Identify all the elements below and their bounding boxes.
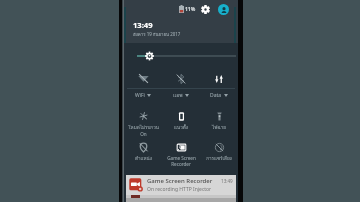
button[interactable]: การแชร์เสียง bbox=[200, 132, 238, 162]
button[interactable]: WiFi bbox=[124, 89, 162, 101]
button[interactable]: ตำแหน่ง bbox=[124, 132, 162, 162]
staticText: Game Screen bbox=[167, 155, 196, 161]
button[interactable]: Wi-Fi bbox=[124, 69, 162, 88]
button[interactable]: Game Screen bbox=[162, 132, 200, 167]
staticText: แนวตั้ง bbox=[174, 124, 188, 131]
staticText: การแชร์เสียง bbox=[206, 155, 232, 162]
staticText: Data bbox=[210, 92, 222, 99]
button[interactable]: Settings bbox=[201, 5, 210, 14]
button[interactable]: Data bbox=[200, 89, 238, 101]
button[interactable]: Bluetooth bbox=[162, 69, 200, 88]
staticText: 13:49 bbox=[133, 20, 153, 30]
staticText: On recording HTTP Injector bbox=[147, 186, 212, 193]
staticText: WiFi bbox=[135, 92, 145, 99]
button[interactable]: แอพ bbox=[162, 89, 200, 101]
staticText: 13:49 bbox=[221, 178, 233, 184]
button[interactable]: แนวตั้ง bbox=[162, 101, 200, 131]
staticText: Recorder bbox=[171, 161, 191, 167]
button[interactable]: ไฟฉาย bbox=[200, 101, 238, 131]
staticText: ตำแหน่ง bbox=[135, 155, 152, 162]
button[interactable]: Game Screen Recorder bbox=[126, 175, 236, 195]
button[interactable]: Account bbox=[218, 4, 229, 15]
button[interactable]: โหมดไม่รบกวน bbox=[124, 101, 162, 137]
staticText: 11% bbox=[185, 6, 196, 13]
staticText: อังคาร 19 กันยายน 2017 bbox=[133, 31, 181, 38]
staticText: แอพ bbox=[173, 91, 183, 99]
button[interactable]: Mobile data bbox=[200, 69, 238, 88]
staticText: ไฟฉาย bbox=[212, 124, 226, 131]
staticText: โหมดไม่รบกวน bbox=[128, 124, 159, 131]
staticText: On bbox=[140, 131, 147, 137]
staticText: Game Screen Recorder bbox=[147, 177, 213, 185]
button[interactable]: Brightness bbox=[124, 43, 238, 69]
